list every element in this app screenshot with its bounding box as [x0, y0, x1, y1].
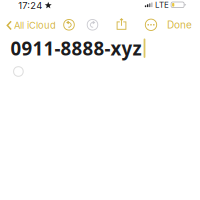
button[interactable]: Share — [116, 18, 127, 30]
staticText: 17:24 — [18, 0, 42, 11]
button[interactable]: Undo — [63, 19, 75, 31]
staticText: LTE — [155, 0, 169, 10]
staticText: 0911-8888-xyz — [11, 36, 142, 61]
button[interactable]: All iCloud — [2, 16, 58, 35]
button[interactable]: More — [145, 19, 157, 30]
staticText: All iCloud — [14, 20, 56, 31]
staticText: Done — [167, 19, 192, 31]
button[interactable]: Redo — [87, 19, 98, 31]
button[interactable]: Done — [164, 15, 195, 35]
